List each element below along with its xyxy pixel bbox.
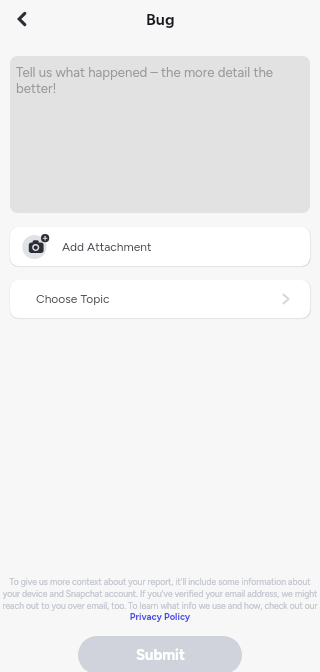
staticText: To give us more context about your repor…	[0, 577, 320, 611]
button[interactable]: Privacy Policy	[0, 611, 320, 622]
button[interactable]: Tell us what happened – the more detail …	[10, 56, 310, 213]
staticText: Add Attachment	[62, 240, 152, 254]
staticText: Submit	[136, 646, 185, 664]
staticText: Tell us what happened – the more detail …	[16, 64, 292, 96]
staticText: Bug	[146, 10, 175, 29]
button[interactable]: Add Attachment	[10, 227, 310, 266]
button[interactable]: Submit	[78, 636, 242, 672]
button[interactable]: Back	[6, 3, 38, 35]
button[interactable]: Choose Topic	[10, 280, 310, 318]
staticText: Choose Topic	[36, 292, 110, 306]
